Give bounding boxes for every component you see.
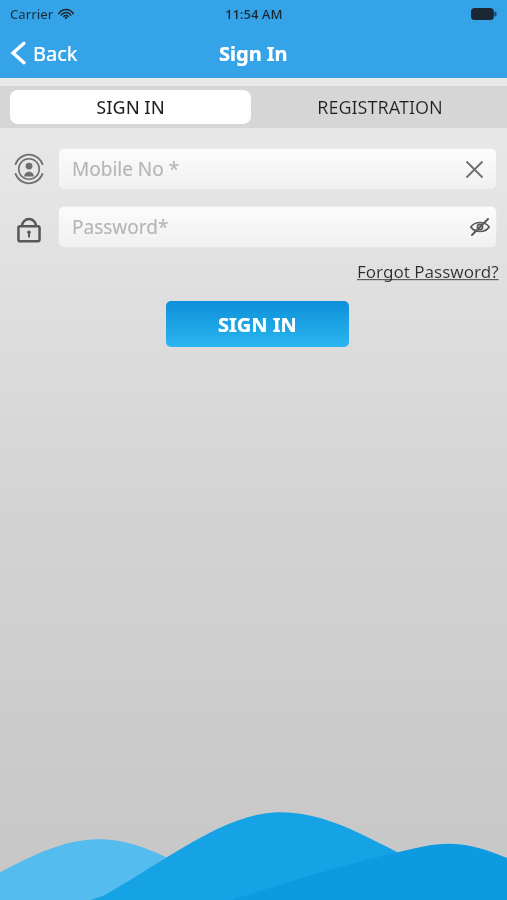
button[interactable]: Forgot Password? (357, 258, 507, 285)
button[interactable]: Clear mobile number (459, 154, 489, 184)
button[interactable]: Password* (58, 206, 497, 248)
staticText: 11:54 AM (225, 5, 283, 23)
staticText: SIGN IN (218, 311, 297, 338)
button[interactable]: Mobile No * (58, 148, 497, 190)
button[interactable]: SIGN IN (166, 301, 349, 347)
button[interactable]: SIGN IN (10, 90, 251, 124)
staticText: Sign In (219, 40, 288, 67)
button[interactable]: Back (0, 28, 90, 78)
button[interactable]: Show password (465, 212, 495, 242)
staticText: Mobile No * (72, 156, 180, 182)
staticText: SIGN IN (96, 95, 165, 120)
staticText: Forgot Password? (357, 260, 499, 283)
staticText: Back (33, 40, 78, 67)
staticText: Password* (72, 214, 169, 240)
staticText: REGISTRATION (317, 95, 443, 120)
button[interactable]: REGISTRATION (253, 86, 507, 128)
staticText: Carrier (10, 5, 54, 23)
